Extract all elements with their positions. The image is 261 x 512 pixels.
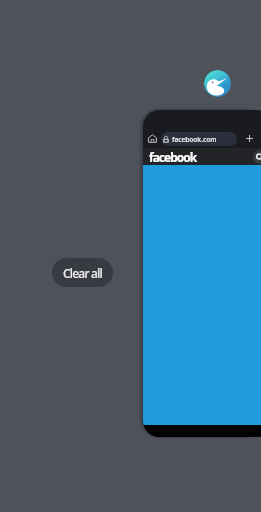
button[interactable]: Home xyxy=(143,110,261,437)
staticText: Clear all xyxy=(63,265,102,281)
button[interactable]: facebook.com xyxy=(161,132,237,146)
button[interactable]: New tab xyxy=(238,127,260,149)
staticText: facebook.com xyxy=(172,135,217,144)
button[interactable]: Kiwi Browser xyxy=(204,70,231,97)
button[interactable]: Home xyxy=(143,127,163,149)
button[interactable]: Search xyxy=(253,150,261,164)
button[interactable]: Clear all xyxy=(52,258,113,287)
staticText: facebook xyxy=(149,149,197,165)
